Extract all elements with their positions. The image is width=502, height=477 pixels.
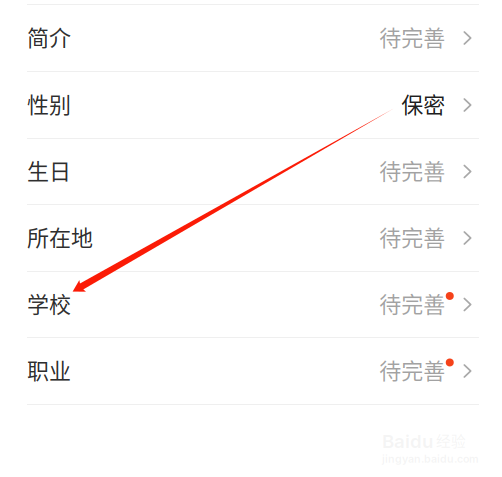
staticText: 待完善 bbox=[379, 154, 445, 186]
staticText: 简介 bbox=[27, 21, 71, 52]
staticText: Baidu bbox=[382, 430, 433, 452]
staticText: 待完善 bbox=[379, 354, 445, 385]
staticText: 待完善 bbox=[379, 221, 445, 252]
button[interactable]: 职业 bbox=[0, 338, 502, 404]
staticText: 待完善 bbox=[379, 21, 445, 52]
staticText: 待完善 bbox=[379, 287, 445, 319]
staticText: 生日 bbox=[27, 154, 71, 186]
button[interactable]: 所在地 bbox=[0, 205, 502, 271]
staticText: 性别 bbox=[27, 88, 71, 119]
button[interactable]: 简介 bbox=[0, 5, 502, 71]
staticText: 保密 bbox=[401, 88, 445, 119]
staticText: 学校 bbox=[27, 287, 71, 319]
staticText: 经验 bbox=[436, 430, 466, 451]
staticText: 所在地 bbox=[27, 221, 93, 252]
staticText: 职业 bbox=[27, 354, 71, 385]
staticText: jingyan.baidu.com bbox=[382, 452, 479, 465]
button[interactable]: 性别 bbox=[0, 72, 502, 138]
button[interactable]: 学校 bbox=[0, 272, 502, 337]
button[interactable]: 生日 bbox=[0, 139, 502, 204]
